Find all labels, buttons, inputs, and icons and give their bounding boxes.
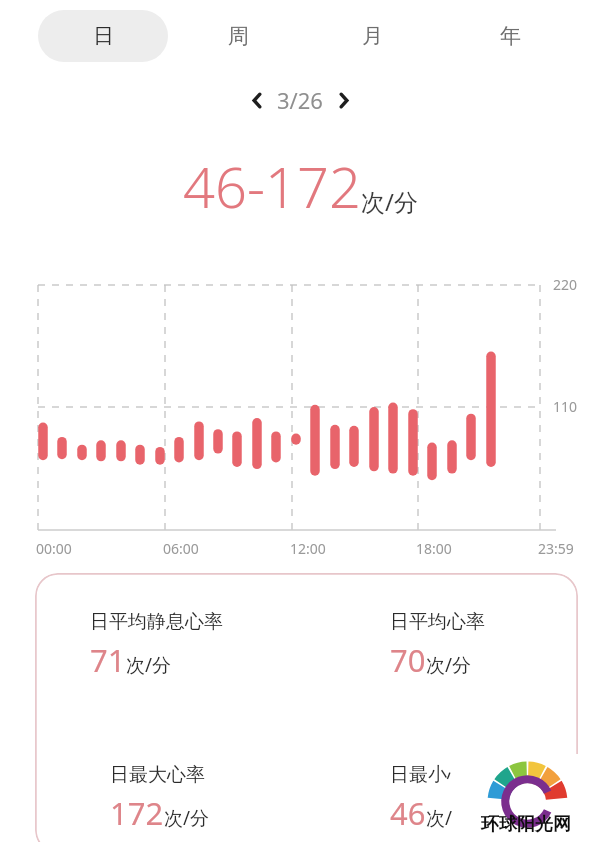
button[interactable]: 日最大心率 (110, 763, 210, 834)
button[interactable]: 日最小心率 (390, 763, 485, 834)
staticText: 46-172 (183, 148, 361, 224)
button[interactable]: Previous day (241, 84, 273, 116)
staticText: 次/分 (164, 805, 210, 831)
staticText: 3/26 (277, 85, 323, 115)
staticText: 次/分 (361, 185, 418, 218)
staticText: 月 (362, 23, 383, 49)
button[interactable]: Next day (327, 84, 359, 116)
button[interactable]: 日 (38, 10, 168, 62)
staticText: 环球阳光网 (481, 813, 571, 836)
staticText: 日平均心率 (390, 610, 485, 634)
staticText: 70 (390, 639, 426, 681)
staticText: 23:59 (538, 539, 574, 558)
button[interactable]: 日平均静息心率 (35, 573, 578, 842)
staticText: 12:00 (290, 539, 326, 558)
staticText: 18:00 (416, 539, 452, 558)
staticText: 46 (390, 792, 426, 834)
staticText: 220 (553, 275, 578, 294)
staticText: 年 (500, 23, 521, 49)
button[interactable]: 周 (193, 10, 283, 62)
staticText: 次/分 (426, 652, 472, 678)
staticText: 次/分 (126, 652, 172, 678)
staticText: 00:00 (36, 539, 72, 558)
button[interactable]: 月 (327, 10, 417, 62)
button[interactable]: 日平均心率 (390, 610, 485, 681)
staticText: 日平均静息心率 (90, 610, 223, 634)
staticText: 日最小心率 (390, 763, 485, 787)
button[interactable]: 日平均静息心率 (90, 610, 223, 681)
staticText: 06:00 (163, 539, 199, 558)
staticText: 110 (553, 397, 578, 416)
button[interactable]: 年 (465, 10, 555, 62)
staticText: 周 (228, 23, 249, 49)
staticText: 日 (93, 23, 114, 49)
staticText: 日最大心率 (110, 763, 205, 787)
staticText: 172 (110, 792, 164, 834)
staticText: 次/分 (426, 805, 472, 831)
staticText: 71 (90, 639, 126, 681)
